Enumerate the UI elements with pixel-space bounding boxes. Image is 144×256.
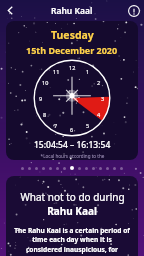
staticText: 10 <box>42 79 49 86</box>
staticText: Tuesday <box>51 28 94 42</box>
staticText: 15th December 2020 <box>26 44 118 56</box>
button[interactable]: Info <box>123 0 144 21</box>
staticText: 1 <box>86 68 90 75</box>
staticText: 5 <box>86 122 90 129</box>
staticText: 8 <box>43 111 47 118</box>
staticText: 12 <box>69 64 76 71</box>
staticText: 4 <box>97 111 101 118</box>
staticText: 7 <box>54 122 58 129</box>
button[interactable]: Tuesday <box>6 21 138 160</box>
staticText: *Local hours according to the geographic… <box>34 153 111 160</box>
staticText: Rahu Kaal <box>47 204 97 218</box>
staticText: 15:04:54 – 16:13:54 <box>34 139 111 151</box>
button[interactable]: What not to do during <box>6 176 138 256</box>
staticText: 2 <box>97 79 101 86</box>
staticText: What not to do during <box>20 190 125 204</box>
staticText: The Rahu Kaal is a certain period of tim… <box>14 226 130 256</box>
button[interactable]: Back <box>0 0 21 21</box>
staticText: 6 <box>70 126 74 133</box>
staticText: 9 <box>39 95 43 102</box>
staticText: 3 <box>101 95 105 102</box>
staticText: Rahu Kaal <box>51 5 93 17</box>
staticText: 11 <box>53 68 60 75</box>
